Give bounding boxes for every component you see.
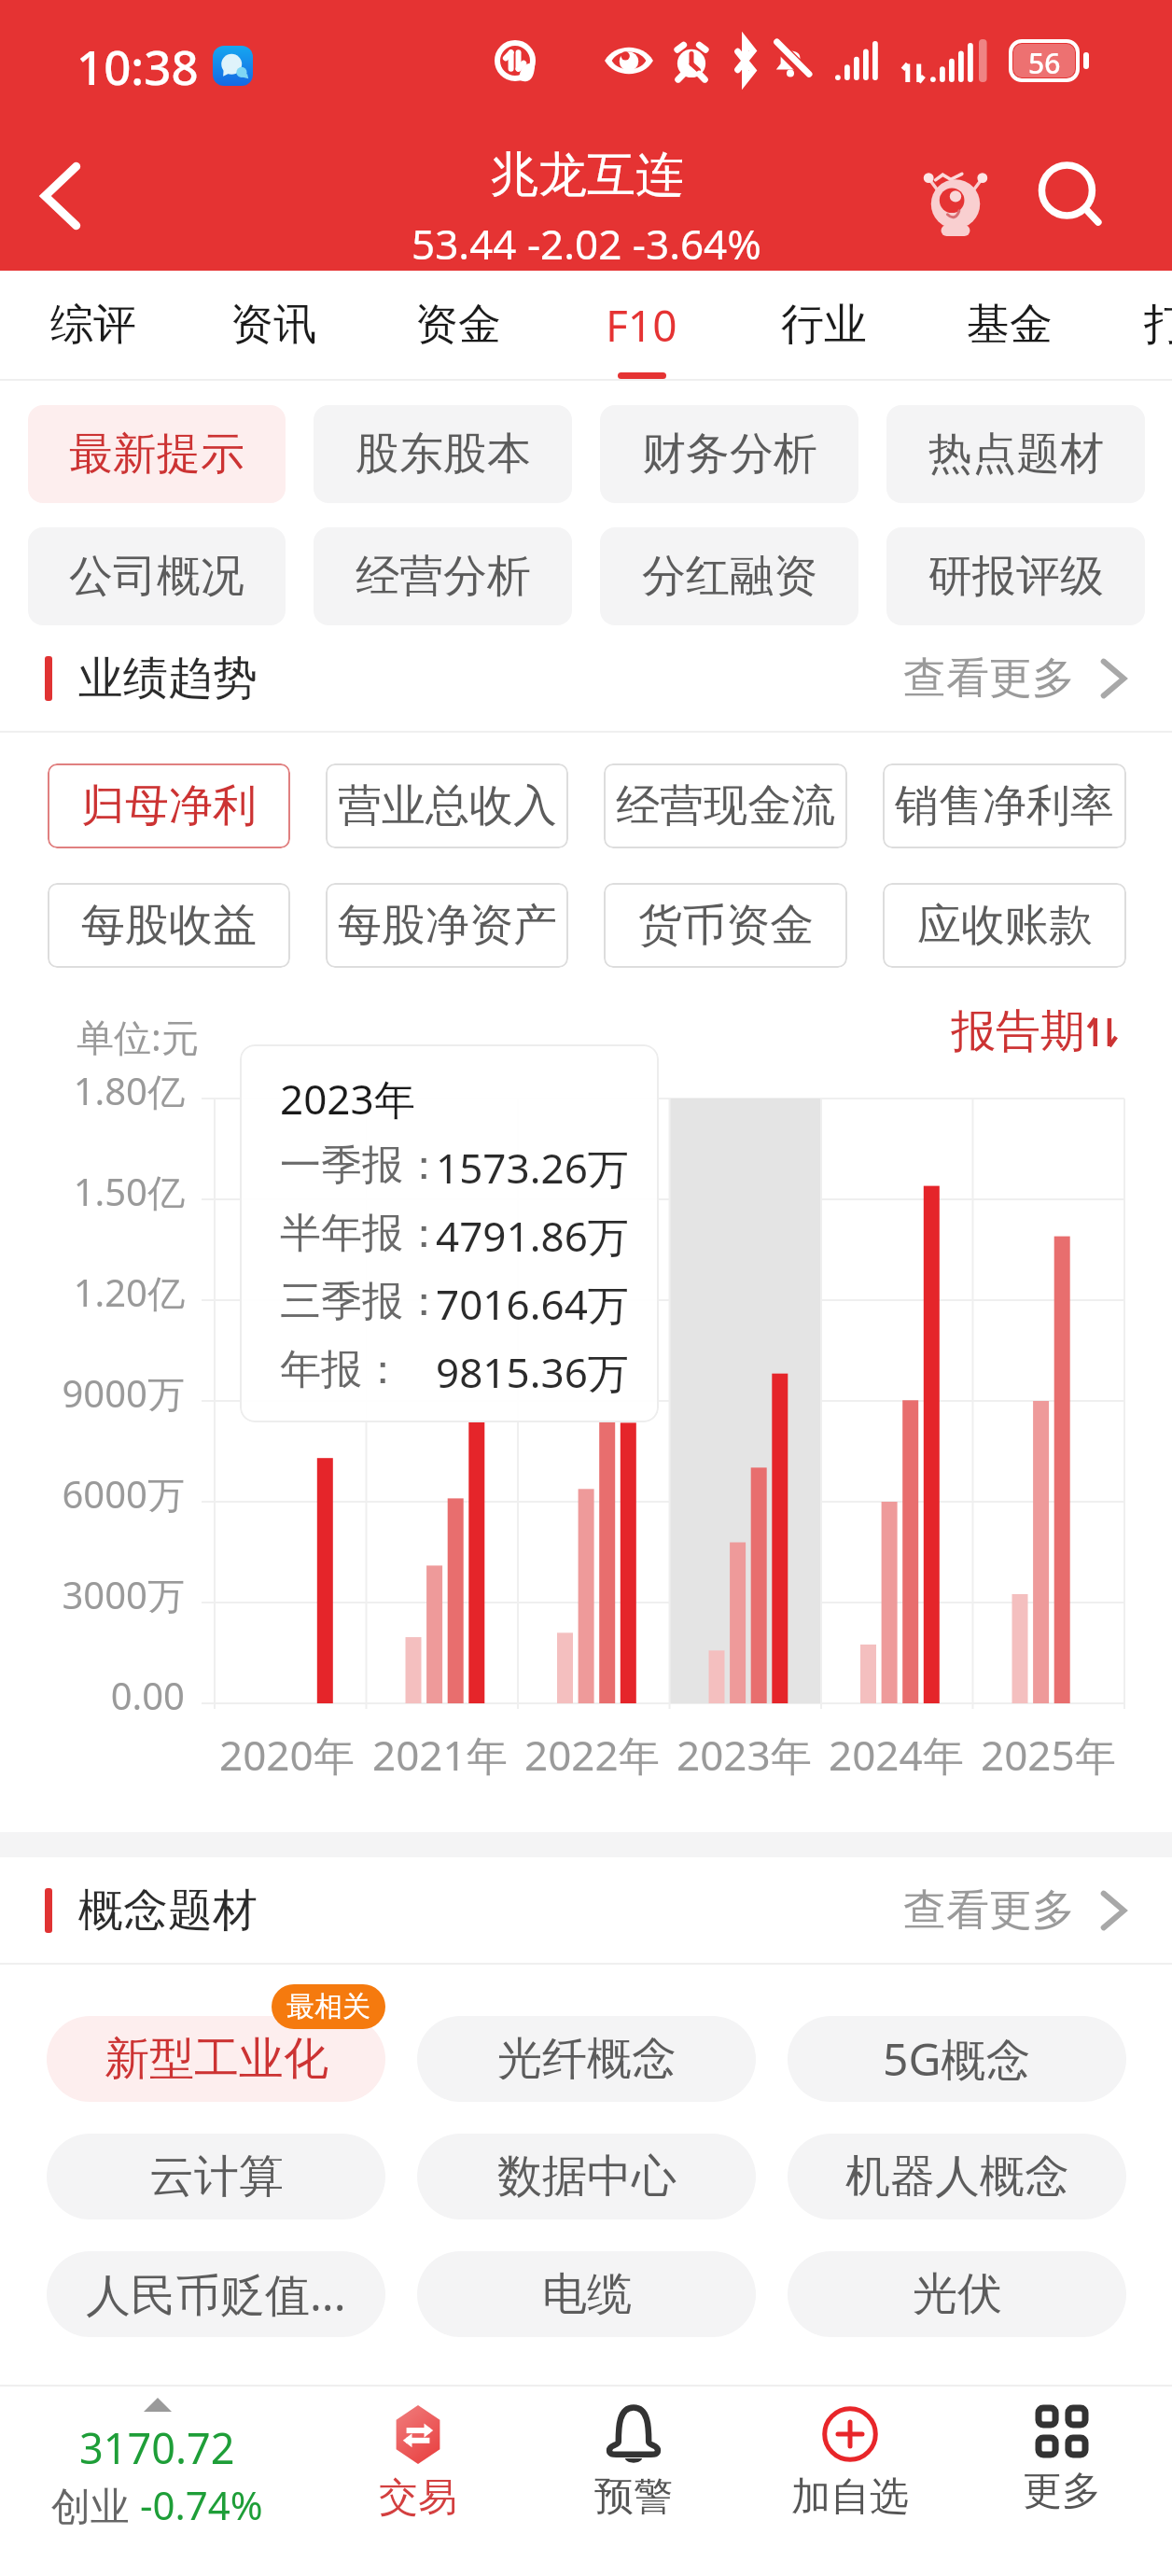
staticText: 6000万 [0,1468,185,1519]
staticText: 1.80亿 [0,1065,185,1116]
staticText: 创业 [51,2478,140,2531]
staticText: 查看更多 [903,651,1075,706]
staticText: 1.50亿 [0,1166,185,1217]
staticText: 预警 [594,2472,673,2522]
button[interactable]: 经营现金流 [604,763,847,848]
staticText: 2021年 [372,1727,508,1783]
button[interactable]: 智能助手 [904,131,1007,261]
staticText: 光伏 [913,2266,1002,2322]
button[interactable]: 资金 [367,271,550,381]
button[interactable]: 查看更多 [903,651,1126,706]
button[interactable]: 公司概况 [28,527,286,625]
staticText: 3170.72 [79,2419,235,2476]
button[interactable]: 3170.72 [45,2387,269,2576]
button[interactable]: 5G概念 [788,2016,1126,2102]
button[interactable]: 人民币贬值... [47,2251,385,2337]
staticText: 交易 [379,2473,457,2523]
staticText: 热点题材 [928,427,1104,482]
staticText: 9815.36万 [436,1344,629,1400]
button[interactable]: 查看更多 [903,1883,1126,1938]
staticText: 2020年 [219,1727,355,1783]
staticText: 5G概念 [883,2028,1031,2090]
staticText: 归母净利 [81,778,257,833]
staticText: 1573.26万 [436,1140,629,1196]
button[interactable]: 返回 [0,121,121,271]
staticText: 2023年 [677,1727,812,1783]
button[interactable]: 归母净利 [48,763,290,848]
staticText: -0.74% [140,2478,263,2531]
staticText: 资讯 [230,298,316,352]
staticText: 业绩趋势 [78,651,258,707]
staticText: 人民币贬值... [86,2263,346,2325]
staticText: 新型工业化 [105,2031,328,2087]
button[interactable]: 报告期 [951,1003,1119,1059]
staticText: 每股净资产 [338,898,557,953]
staticText: 0.00 [0,1670,185,1720]
button[interactable]: 打 [1074,271,1172,381]
staticText: 股东股本 [356,427,531,482]
button[interactable]: 云计算 [47,2134,385,2219]
staticText: 56 [1028,44,1061,77]
staticText: 分红融资 [642,549,817,604]
staticText: 2025年 [981,1727,1116,1783]
button[interactable]: 应收账款 [883,883,1126,968]
button[interactable]: 资讯 [182,271,365,381]
staticText: 营业总收入 [338,778,557,833]
staticText: 财务分析 [642,427,817,482]
staticText: 光纤概念 [497,2031,677,2087]
button[interactable]: 股东股本 [314,405,572,503]
staticText: 打 [1144,298,1172,352]
staticText: 4791.86万 [436,1208,629,1264]
button[interactable]: 数据中心 [417,2134,756,2219]
staticText: 兆龙互连 [490,145,684,206]
button[interactable]: 研报评级 [886,527,1145,625]
button[interactable]: 光伏 [788,2251,1126,2337]
staticText: 数据中心 [497,2149,677,2205]
staticText: 公司概况 [69,549,244,604]
staticText: 经营现金流 [616,778,835,833]
staticText: 53.44 -2.02 -3.64% [412,216,761,272]
staticText: 加自选 [791,2472,909,2522]
button[interactable]: 交易 [315,2387,521,2576]
button[interactable]: F10 [550,271,732,381]
staticText: 最相关 [286,1989,370,2024]
staticText: 更多 [1023,2467,1101,2516]
button[interactable]: 货币资金 [604,883,847,968]
button[interactable]: 经营分析 [314,527,572,625]
staticText: 9000万 [0,1367,185,1419]
button[interactable]: 加自选 [747,2387,953,2576]
button[interactable]: 财务分析 [600,405,858,503]
button[interactable]: 新型工业化 [47,2016,385,2102]
button[interactable]: 最新提示 [28,405,286,503]
staticText: 1.20亿 [0,1267,185,1318]
button[interactable]: 搜索 [1020,131,1123,261]
button[interactable]: 分红融资 [600,527,858,625]
button[interactable]: 每股净资产 [326,883,568,968]
button[interactable]: 每股收益 [48,883,290,968]
staticText: 货币资金 [638,898,814,953]
staticText: 报告期 [951,1003,1085,1059]
staticText: 2024年 [829,1727,964,1783]
button[interactable]: 销售净利率 [883,763,1126,848]
staticText: 每股收益 [81,898,257,953]
button[interactable]: 综评 [2,271,185,381]
staticText: 基金 [967,298,1053,352]
staticText: 3000万 [0,1569,185,1620]
button[interactable]: 机器人概念 [788,2134,1126,2219]
staticText: 2022年 [524,1727,660,1783]
staticText: 机器人概念 [845,2149,1069,2205]
staticText: 7016.64万 [436,1276,629,1332]
staticText: 2023年 [280,1071,415,1127]
staticText: 查看更多 [903,1883,1075,1938]
button[interactable]: 更多 [959,2387,1165,2576]
button[interactable]: 基金 [918,271,1101,381]
staticText: 行业 [781,298,867,352]
button[interactable]: 热点题材 [886,405,1145,503]
button[interactable]: 光纤概念 [417,2016,756,2102]
staticText: 研报评级 [928,549,1104,604]
button[interactable]: 行业 [732,271,915,381]
button[interactable]: 电缆 [417,2251,756,2337]
staticText: 年报： [280,1344,403,1395]
button[interactable]: 预警 [531,2387,736,2576]
button[interactable]: 营业总收入 [326,763,568,848]
